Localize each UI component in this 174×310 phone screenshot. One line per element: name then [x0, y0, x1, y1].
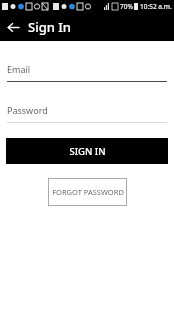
staticText: 10:52 a.m. — [140, 2, 172, 11]
button[interactable]: Back — [0, 14, 26, 40]
button[interactable]: FORGOT PASSWORD — [48, 178, 127, 206]
staticText: Password — [7, 104, 48, 116]
button[interactable]: SIGN IN — [6, 138, 168, 164]
staticText: Sign In — [28, 18, 72, 36]
staticText: Email — [7, 63, 31, 75]
staticText: FORGOT PASSWORD — [52, 187, 124, 197]
staticText: 70% — [120, 2, 133, 11]
staticText: SIGN IN — [69, 145, 106, 158]
